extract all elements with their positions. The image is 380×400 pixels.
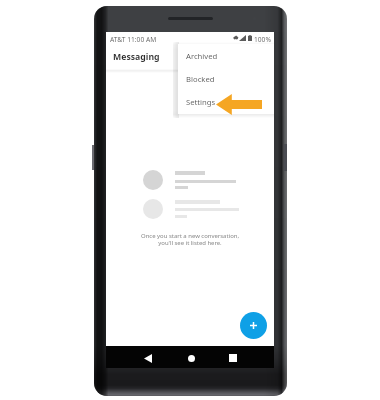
button[interactable]: Home	[182, 349, 200, 367]
staticText: Once you start a new conversation, you'l…	[106, 232, 274, 247]
staticText: Blocked	[186, 74, 215, 84]
button[interactable]: Archived	[178, 44, 274, 67]
button[interactable]: Back	[139, 349, 157, 367]
staticText: Archived	[186, 51, 218, 61]
staticText: Messaging	[113, 51, 160, 63]
button[interactable]: Settings	[178, 90, 274, 113]
staticText: 100%	[254, 35, 271, 44]
button[interactable]: Messaging	[106, 44, 274, 69]
button[interactable]: Recent apps	[224, 349, 242, 367]
staticText: AT&T 11:00 AM	[110, 35, 157, 44]
button[interactable]: New conversation	[240, 312, 267, 339]
button[interactable]: Blocked	[178, 67, 274, 90]
staticText: Settings	[186, 97, 216, 107]
